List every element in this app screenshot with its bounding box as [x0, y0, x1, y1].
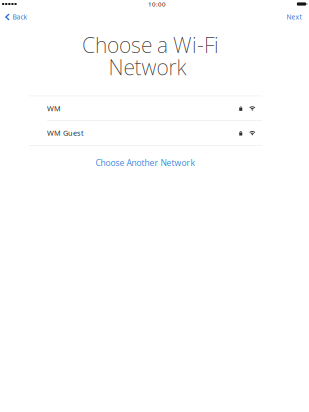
button[interactable]: WM: [29, 96, 262, 120]
staticText: WM Guest: [47, 128, 84, 138]
button[interactable]: Choose Another Network: [29, 156, 262, 170]
staticText: Choose a Wi-Fi: [82, 31, 219, 59]
staticText: Network: [108, 53, 186, 81]
staticText: WM: [47, 103, 61, 113]
button[interactable]: WM Guest: [29, 121, 262, 145]
staticText: Next: [286, 12, 301, 22]
button[interactable]: Next: [279, 9, 309, 25]
staticText: 10:00: [148, 0, 166, 8]
button[interactable]: Back: [0, 9, 34, 25]
staticText: Back: [12, 12, 27, 22]
staticText: Choose Another Network: [95, 157, 195, 169]
